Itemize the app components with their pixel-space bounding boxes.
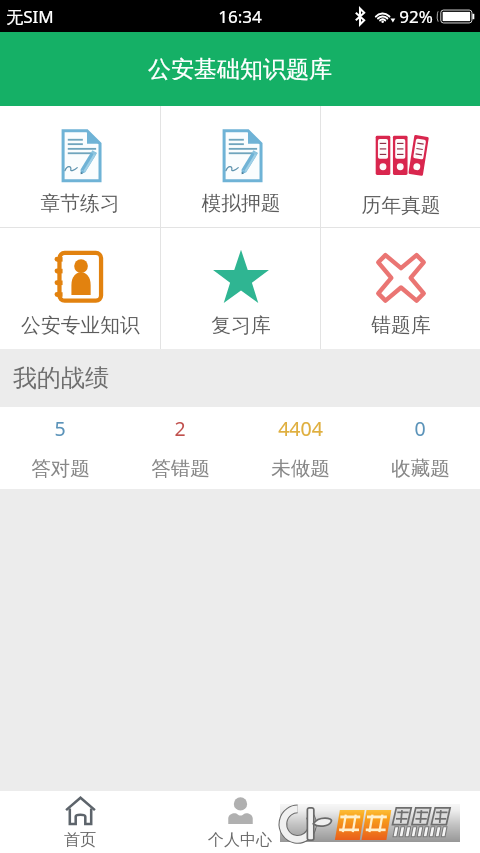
staticText: 4404 (278, 415, 323, 442)
other: Profile (225, 796, 256, 827)
staticText: 无SIM (6, 5, 54, 28)
staticText: 答对题 (31, 456, 90, 481)
staticText: 历年真题 (361, 193, 441, 218)
button[interactable]: 4404 (240, 407, 360, 489)
staticText: 公安基础知识题库 (148, 55, 332, 84)
button[interactable]: 模拟押题 (161, 106, 320, 227)
staticText: 个人中心 (208, 830, 272, 850)
button[interactable]: Profile (160, 791, 320, 853)
button[interactable]: 错题库 (321, 228, 480, 349)
button[interactable]: 历年真题 (321, 106, 480, 227)
staticText: 答错题 (151, 456, 210, 481)
staticText: 92% (399, 5, 433, 28)
staticText: 公安专业知识 (21, 313, 140, 338)
staticText: 收藏题 (391, 456, 450, 481)
staticText: 错题库 (371, 313, 431, 338)
button[interactable]: 2 (120, 407, 240, 489)
staticText: 首页 (64, 830, 96, 850)
staticText: 复习库 (211, 313, 271, 338)
button[interactable]: 0 (360, 407, 480, 489)
staticText: 章节练习 (40, 191, 120, 216)
button[interactable]: Home (0, 791, 160, 853)
staticText: 未做题 (271, 456, 330, 481)
button[interactable]: 公安专业知识 (0, 228, 160, 349)
button[interactable]: 章节练习 (0, 106, 160, 227)
other: Home (65, 796, 96, 827)
staticText: 2 (174, 415, 186, 442)
staticText: 16:34 (218, 5, 262, 28)
staticText: 5 (54, 415, 66, 442)
button[interactable]: 5 (0, 407, 120, 489)
staticText: 我的战绩 (13, 363, 109, 393)
button[interactable]: 复习库 (161, 228, 320, 349)
staticText: 0 (414, 415, 426, 442)
staticText: 模拟押题 (201, 191, 281, 216)
